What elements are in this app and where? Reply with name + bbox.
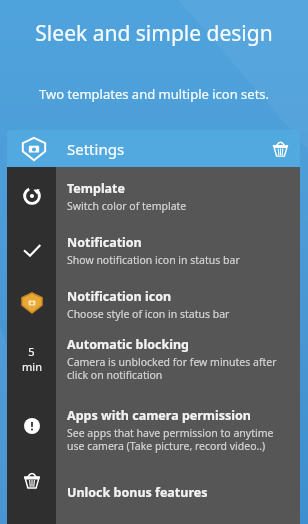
staticText: Notification icon bbox=[67, 288, 172, 305]
staticText: Sleek and simple design bbox=[0, 19, 308, 48]
staticText: 5 bbox=[28, 344, 35, 359]
staticText: Choose style of icon in status bar bbox=[67, 307, 230, 321]
staticText: Show notification icon in status bar bbox=[67, 253, 240, 267]
staticText: Automatic blocking bbox=[67, 336, 189, 353]
button[interactable]: App logo bbox=[7, 130, 60, 167]
button[interactable]: Notification bbox=[7, 223, 300, 279]
staticText: min bbox=[22, 359, 42, 374]
staticText: Camera is unblocked for few minutes afte… bbox=[67, 355, 290, 382]
button[interactable]: Apps with camera permission bbox=[7, 399, 300, 465]
staticText: Settings bbox=[67, 139, 125, 159]
button[interactable]: Unlock bonus features bbox=[7, 465, 300, 521]
button[interactable]: Template bbox=[7, 167, 300, 223]
button[interactable]: Notification icon bbox=[7, 279, 300, 331]
staticText: Apps with camera permission bbox=[67, 407, 251, 424]
staticText: Notification bbox=[67, 234, 142, 251]
staticText: Switch color of template bbox=[67, 199, 187, 213]
staticText: Two templates and multiple icon sets. bbox=[0, 85, 308, 103]
staticText: See apps that have permission to anytime… bbox=[67, 426, 290, 453]
button[interactable]: 5 bbox=[7, 331, 300, 399]
staticText: Template bbox=[67, 180, 125, 197]
staticText: Unlock bonus features bbox=[67, 484, 208, 501]
button[interactable]: Store bbox=[260, 130, 300, 167]
